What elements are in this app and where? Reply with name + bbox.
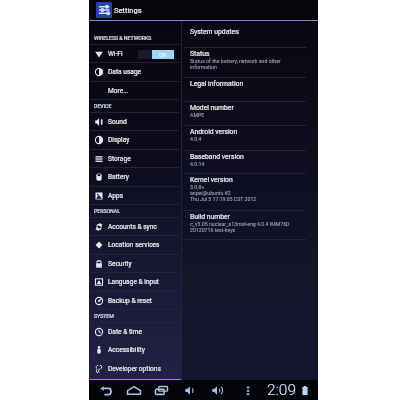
staticText: Backup & reset <box>108 297 152 305</box>
staticText: Storage <box>108 155 131 163</box>
staticText: Baseband version <box>190 153 244 161</box>
staticText: ON <box>159 52 167 58</box>
staticText: Display <box>108 136 130 144</box>
staticText: Settings <box>114 6 142 15</box>
staticText: AMPE <box>190 112 205 118</box>
staticText: Accessibility <box>108 346 145 354</box>
staticText: Location services <box>108 241 160 249</box>
staticText: Language & input <box>108 278 160 286</box>
staticText: Build number <box>190 213 230 221</box>
staticText: Model number <box>190 104 234 112</box>
button[interactable]: More... <box>89 82 181 100</box>
staticText: Battery <box>108 173 129 181</box>
button[interactable]: Wi-Fi <box>89 45 181 63</box>
staticText: Wi-Fi <box>108 50 123 58</box>
staticText: 20120716 test-keys <box>190 227 236 233</box>
staticText: Date & time <box>108 328 142 336</box>
button[interactable]: Data usage <box>89 63 181 81</box>
button[interactable]: Volume up <box>210 380 224 400</box>
button[interactable]: Legal information <box>182 77 318 100</box>
button[interactable]: Menu <box>242 380 254 400</box>
button[interactable]: Status <box>182 47 318 78</box>
button[interactable]: Battery status <box>300 380 310 400</box>
button[interactable]: Storage <box>89 150 181 168</box>
button[interactable]: Back <box>98 380 114 400</box>
button[interactable]: Display <box>89 131 181 149</box>
staticText: Legal information <box>190 80 244 88</box>
staticText: 3.0.8+ <box>190 184 205 190</box>
button[interactable]: Build number <box>182 210 318 239</box>
staticText: 2:09 <box>267 381 297 399</box>
staticText: More... <box>108 87 129 95</box>
button[interactable]: Accounts & sync <box>89 218 181 236</box>
staticText: 4.0.4 <box>190 136 202 142</box>
button[interactable]: Battery <box>89 168 181 186</box>
staticText: Sound <box>108 118 127 126</box>
staticText: Accounts & sync <box>108 223 157 231</box>
button[interactable]: Date & time <box>89 323 181 341</box>
button[interactable]: Volume down <box>183 380 195 400</box>
button[interactable]: Settings <box>89 0 318 20</box>
staticText: anpei@ubuntu #2 <box>190 190 231 196</box>
button[interactable]: Location services <box>89 236 181 254</box>
button[interactable]: Baseband version <box>182 150 318 174</box>
staticText: Status of the battery, network and other <box>190 58 281 64</box>
staticText: Thu Jul 5 17:19:03 CST 2012 <box>190 196 257 202</box>
staticText: WIRELESS & NETWORKS <box>94 35 152 41</box>
button[interactable]: Language & input <box>89 273 181 291</box>
button[interactable]: Android version <box>182 125 318 150</box>
button[interactable]: Model number <box>182 101 318 126</box>
staticText: System updates <box>190 28 239 36</box>
button[interactable]: System updates <box>182 25 318 47</box>
staticText: Kernel version <box>190 176 233 184</box>
button[interactable]: Backup & reset <box>89 292 181 310</box>
staticText: Android version <box>190 128 238 136</box>
staticText: Security <box>108 260 132 268</box>
button[interactable]: Apps <box>89 187 181 205</box>
button[interactable]: Recent apps <box>153 380 170 400</box>
staticText: Data usage <box>108 68 142 76</box>
button[interactable]: Home <box>125 380 143 400</box>
staticText: SYSTEM <box>94 313 114 319</box>
staticText: 4.0.14 <box>190 161 205 167</box>
staticText: Status <box>190 50 210 58</box>
button[interactable]: Accessibility <box>89 341 181 359</box>
staticText: Developer options <box>108 365 161 373</box>
staticText: PERSONAL <box>94 208 120 214</box>
button[interactable]: ON <box>138 50 174 59</box>
staticText: c_v3.05 nuclear_a13mid-eng 4.0.4 IMM76D <box>190 221 290 227</box>
button[interactable]: Sound <box>89 113 181 131</box>
button[interactable]: Developer options <box>89 360 181 378</box>
staticText: Apps <box>108 192 124 200</box>
staticText: information <box>190 64 217 70</box>
button[interactable]: Kernel version <box>182 173 318 210</box>
staticText: DEVICE <box>94 103 112 109</box>
button[interactable]: Security <box>89 255 181 273</box>
